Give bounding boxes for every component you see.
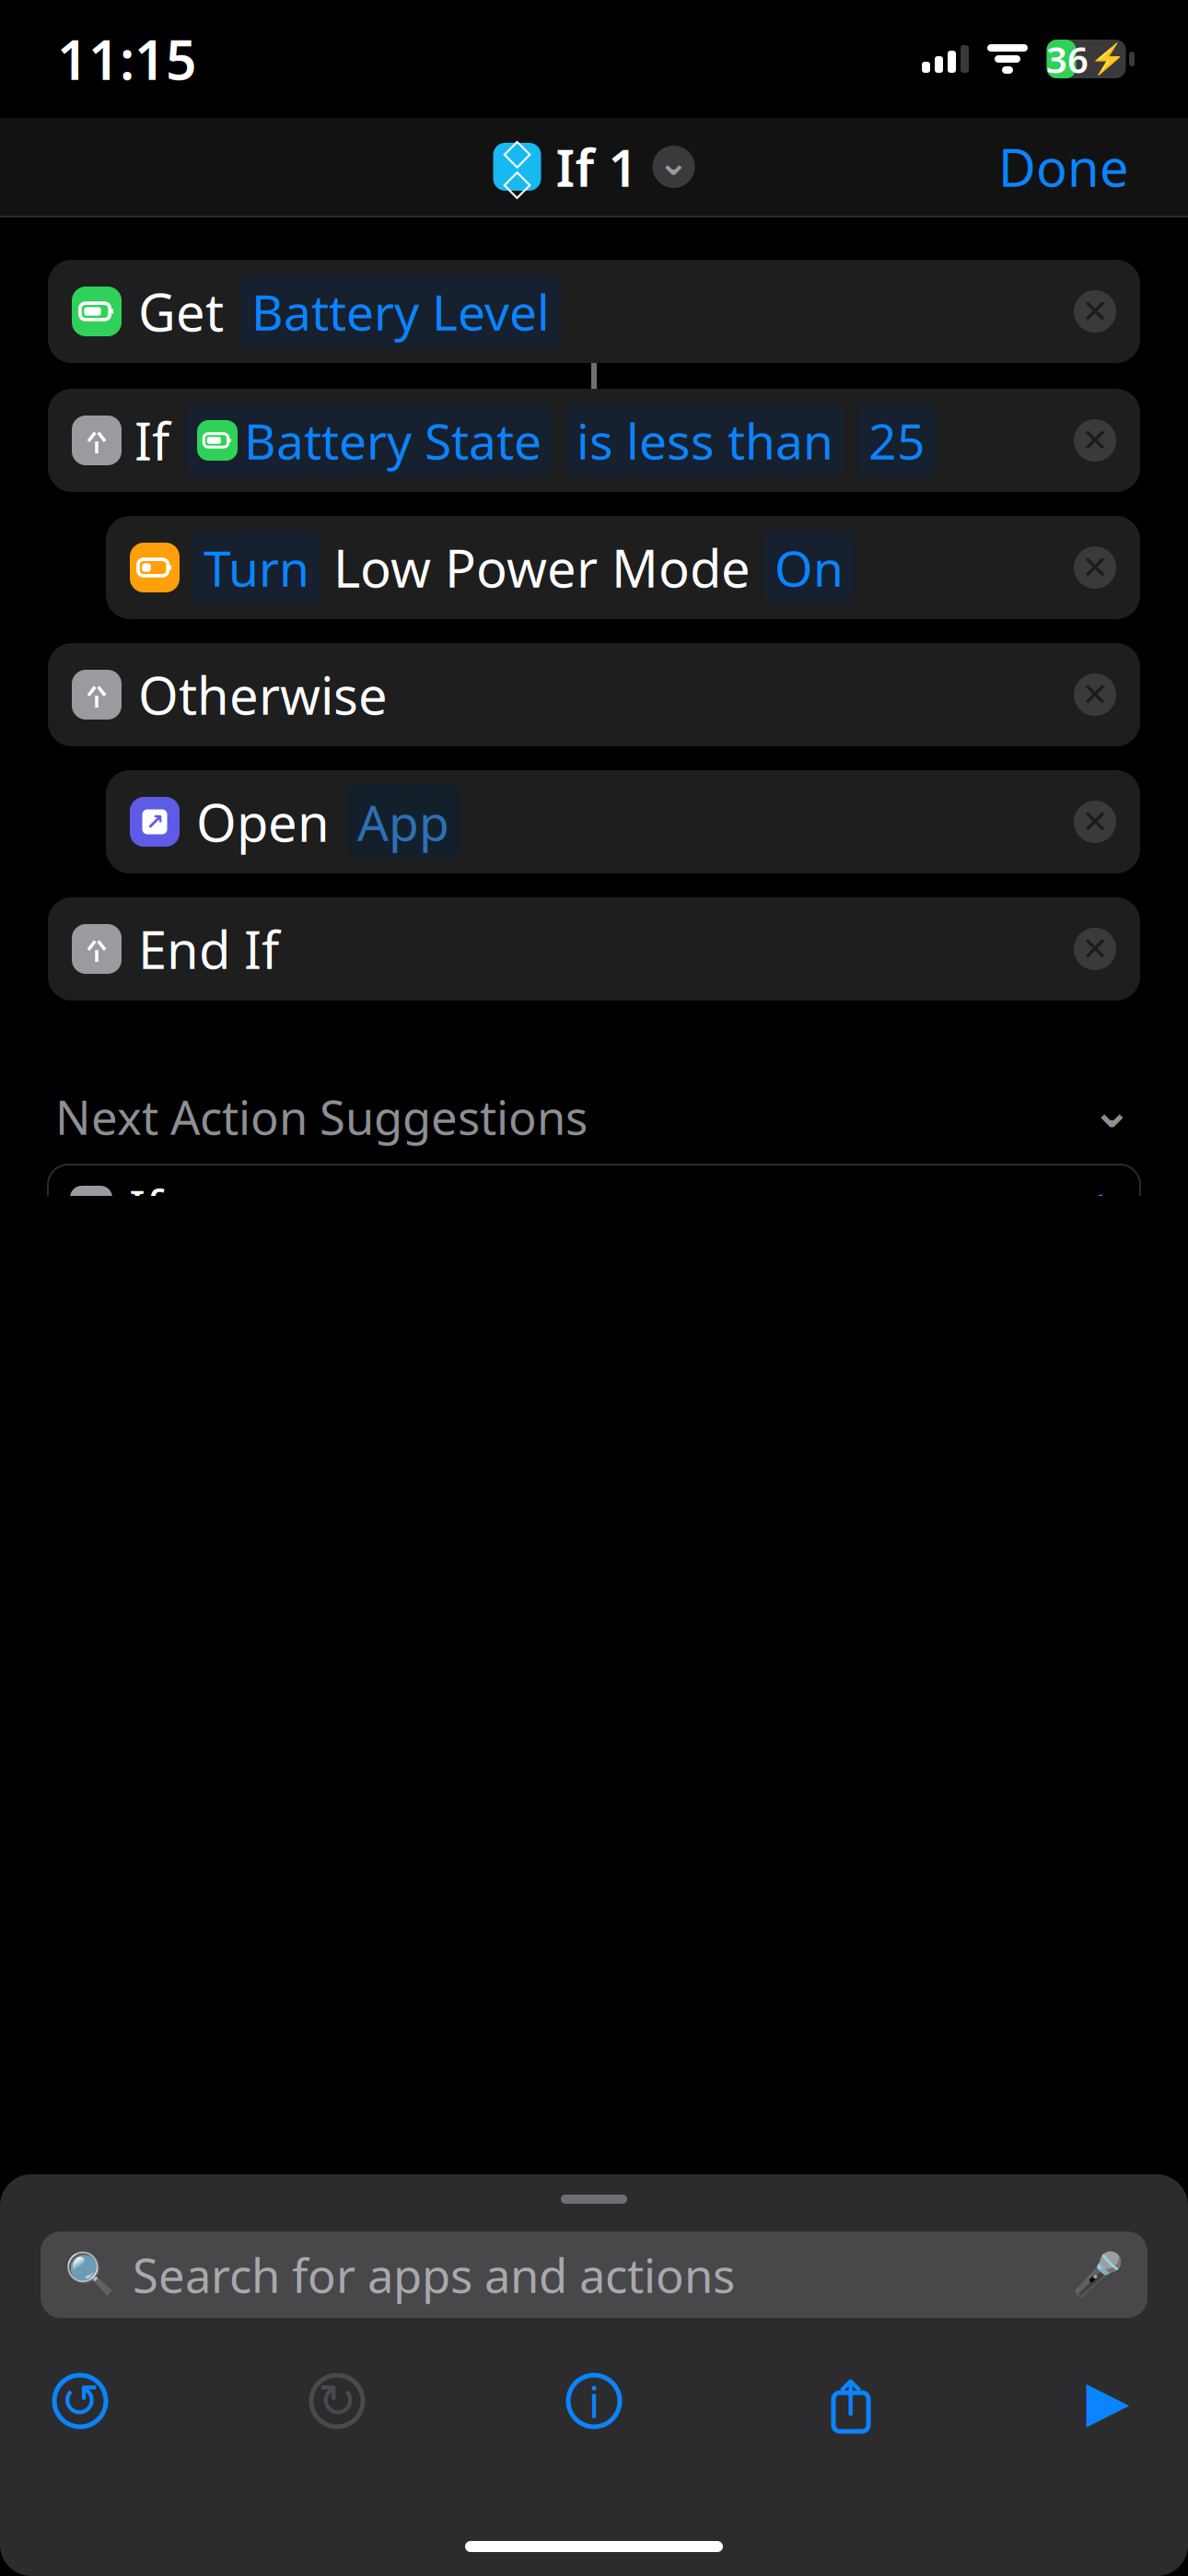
staticText: 🎤 (1072, 2251, 1124, 2299)
staticText: App (357, 789, 449, 854)
staticText: Battery Level (251, 279, 550, 344)
staticText: Open (196, 788, 330, 856)
staticText: ◇ (503, 130, 531, 172)
staticText: ✕ (1082, 804, 1108, 840)
button[interactable]: Shortcut Details (562, 2369, 626, 2433)
staticText: Low Power Mode (333, 533, 751, 602)
staticText: ↻ (318, 2374, 356, 2427)
button[interactable]: Remove action (1063, 535, 1127, 600)
staticText: ✕ (1082, 293, 1108, 329)
staticText: ✕ (1082, 931, 1108, 967)
button[interactable]: Remove action (1063, 279, 1127, 344)
staticText: ▶ (1086, 2369, 1130, 2433)
button[interactable]: Otherwise (48, 643, 1140, 746)
button[interactable]: Next Action Suggestions (48, 1069, 1140, 1165)
button[interactable]: Remove action (1063, 917, 1127, 981)
staticText: + (1084, 1168, 1118, 1246)
staticText: ⌄ (1091, 1082, 1133, 1138)
staticText: ✕ (1082, 677, 1108, 713)
staticText: Battery State (244, 408, 542, 473)
staticText: ✕ (1082, 549, 1108, 586)
staticText: 36 (1046, 34, 1089, 83)
staticText: 🔍 (64, 2251, 116, 2299)
staticText: is less than (577, 408, 833, 473)
button[interactable]: If (48, 1165, 1140, 1249)
button[interactable]: If (48, 389, 1140, 492)
button[interactable]: 🔍 (41, 2231, 1147, 2318)
staticText: Done (998, 132, 1129, 201)
staticText: End If (138, 915, 279, 983)
staticText: ↑ (830, 2371, 872, 2426)
button[interactable]: Run Shortcut (1076, 2369, 1140, 2433)
staticText: i (588, 2372, 600, 2430)
button[interactable]: Get (48, 260, 1140, 363)
button[interactable]: ↗ (48, 770, 1140, 873)
staticText: 11:15 (57, 23, 197, 95)
staticText: Turn (204, 535, 309, 600)
staticText: If 1 (556, 132, 638, 201)
staticText: Search for apps and actions (133, 2244, 735, 2306)
button[interactable]: Done (976, 120, 1151, 214)
staticText: ⌄ (658, 141, 689, 183)
button[interactable]: Remove action (1063, 790, 1127, 854)
button[interactable]: Redo (305, 2369, 369, 2433)
button[interactable]: End If (48, 897, 1140, 1001)
button[interactable]: Share (819, 2369, 883, 2433)
staticText: Next Action Suggestions (55, 1086, 588, 1148)
button[interactable]: ◇ (493, 130, 695, 203)
staticText: 25 (868, 408, 926, 473)
staticText: Otherwise (138, 660, 388, 729)
staticText: ↗ (146, 809, 164, 834)
staticText: If (129, 1174, 162, 1240)
staticText: On (775, 535, 844, 600)
staticText: ↺ (61, 2374, 99, 2427)
button[interactable]: Remove action (1063, 662, 1127, 727)
button[interactable]: Undo (48, 2369, 112, 2433)
staticText: If (134, 406, 169, 475)
button[interactable]: Remove action (1063, 408, 1127, 473)
staticText: ⚡ (1089, 42, 1126, 76)
staticText: ✕ (1082, 422, 1108, 458)
staticText: ◇ (503, 161, 531, 203)
staticText: Get (138, 277, 224, 346)
button[interactable]: Turn (48, 516, 1140, 619)
